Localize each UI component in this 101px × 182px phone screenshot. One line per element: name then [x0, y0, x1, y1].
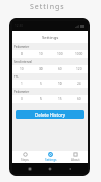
staticText: 60	[77, 97, 81, 101]
button[interactable]: 15	[50, 95, 69, 103]
button[interactable]: 24	[69, 80, 88, 88]
staticText: 100	[57, 52, 63, 56]
staticText: Settings	[45, 158, 57, 162]
button[interactable]: 10	[31, 50, 50, 58]
staticText: About	[71, 158, 80, 162]
staticText: 1	[21, 82, 23, 86]
button[interactable]: Delete History	[16, 110, 84, 119]
button[interactable]: 10	[50, 80, 69, 88]
staticText: 0	[21, 97, 23, 101]
button[interactable]: About	[63, 152, 88, 162]
staticText: 24	[77, 82, 81, 86]
button[interactable]: 60	[50, 65, 69, 73]
staticText: 60	[58, 67, 62, 71]
staticText: 10	[20, 67, 24, 71]
staticText: Send interval	[14, 60, 32, 64]
staticText: 30	[39, 67, 43, 71]
button[interactable]: 10	[12, 65, 31, 73]
button[interactable]: 5	[31, 95, 50, 103]
staticText: 120	[76, 67, 82, 71]
button[interactable]: 30	[31, 65, 50, 73]
button[interactable]: 120	[69, 65, 88, 73]
button[interactable]: 1	[12, 80, 31, 88]
button[interactable]: 1000	[69, 50, 88, 58]
button[interactable]: Settings	[38, 152, 63, 162]
staticText: 1000	[75, 52, 83, 56]
staticText: 10	[39, 52, 43, 56]
staticText: Pedometer	[14, 45, 30, 49]
other: Recents	[28, 167, 32, 171]
button[interactable]: 5	[31, 80, 50, 88]
staticText: 0	[21, 52, 23, 56]
staticText: 15	[58, 97, 62, 101]
staticText: TTL	[14, 75, 19, 79]
other: Home	[48, 167, 52, 171]
staticText: Steps	[21, 158, 29, 162]
staticText: 5	[40, 97, 42, 101]
button[interactable]: 0	[12, 95, 31, 103]
button[interactable]: 60	[69, 95, 88, 103]
staticText: Settings	[42, 34, 59, 40]
other: Back	[68, 167, 72, 171]
button[interactable]: 0	[12, 50, 31, 58]
staticText: Delete History	[35, 112, 66, 118]
button[interactable]: 100	[50, 50, 69, 58]
staticText: 5	[40, 82, 42, 86]
staticText: Pedometer	[14, 90, 30, 94]
staticText: 10	[58, 82, 62, 86]
button[interactable]: Steps	[12, 152, 38, 162]
staticText: Settings	[30, 2, 65, 12]
staticText: 12:30	[15, 24, 24, 28]
